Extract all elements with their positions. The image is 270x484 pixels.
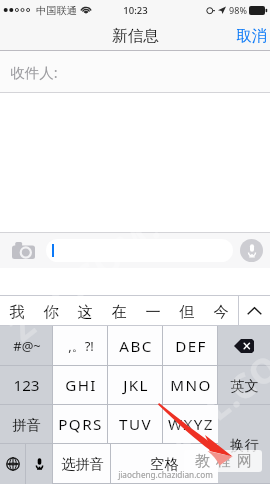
button[interactable]: 选拼音 — [53, 444, 111, 484]
staticText: 收件人: — [10, 62, 58, 82]
staticText: WXYZ — [168, 414, 214, 435]
staticText: JKL — [123, 375, 149, 396]
button[interactable]: Expand candidates — [238, 296, 270, 326]
staticText: MNO — [170, 375, 212, 396]
staticText: 今 — [213, 302, 229, 321]
staticText: TUV — [119, 414, 152, 435]
staticText: 新信息 — [112, 26, 159, 46]
staticText: ZOL.COM.CN — [0, 173, 210, 351]
button[interactable]: 换行 — [218, 405, 270, 484]
button[interactable]: DEF — [163, 326, 218, 366]
button[interactable]: 英文 — [218, 366, 270, 405]
staticText: 换行 — [230, 436, 259, 454]
staticText: 这 — [77, 302, 93, 321]
staticText: 但 — [179, 302, 195, 321]
staticText: 教程网 — [192, 452, 255, 471]
button[interactable]: 取消 — [226, 20, 270, 51]
staticText: 中国联通 — [36, 4, 77, 17]
button[interactable]: Switch keyboard — [0, 444, 26, 484]
staticText: #@~ — [13, 337, 41, 355]
staticText: 取消 — [236, 26, 267, 45]
staticText: 英文 — [230, 377, 259, 395]
staticText: 你 — [43, 302, 59, 321]
staticText: DEF — [175, 336, 207, 357]
button[interactable]: 这 — [68, 296, 102, 326]
button[interactable]: Backspace — [218, 326, 270, 366]
button[interactable]: TUV — [108, 405, 163, 444]
button[interactable]: ABC — [108, 326, 163, 366]
button[interactable]: Camera — [0, 232, 46, 268]
button[interactable]: ,。?! — [53, 326, 108, 366]
button[interactable]: 我 — [0, 296, 34, 326]
staticText: GHI — [65, 375, 97, 396]
button[interactable]: Voice message — [233, 232, 270, 268]
button[interactable]: 但 — [170, 296, 204, 326]
staticText: 10:23 — [123, 4, 148, 17]
staticText: 选拼音 — [61, 455, 104, 473]
staticText: ABC — [119, 336, 153, 357]
staticText: ZOL.COM.CN — [156, 283, 270, 461]
staticText: 拼音 — [12, 416, 41, 434]
staticText: 一 — [145, 302, 161, 321]
button[interactable]: #@~ — [0, 326, 53, 366]
staticText: jiaocheng.chazidian.com — [118, 469, 213, 480]
staticText: 空格 — [150, 455, 179, 473]
staticText: 98% — [229, 4, 247, 16]
button[interactable]: WXYZ — [163, 405, 218, 444]
staticText: PQRS — [58, 414, 103, 435]
button[interactable]: 你 — [34, 296, 68, 326]
button[interactable]: 收件人: — [0, 51, 270, 93]
staticText: 我 — [9, 302, 25, 321]
button[interactable]: 123 — [0, 366, 53, 405]
staticText: 在 — [111, 302, 127, 321]
button[interactable]: 空格 — [111, 444, 218, 484]
button[interactable]: Dictation — [26, 444, 53, 484]
button[interactable]: MNO — [163, 366, 218, 405]
button[interactable]: PQRS — [53, 405, 108, 444]
button[interactable] — [46, 239, 233, 262]
staticText: ,。?! — [68, 337, 94, 355]
staticText: 123 — [13, 375, 40, 396]
button[interactable]: JKL — [108, 366, 163, 405]
button[interactable]: 拼音 — [0, 405, 53, 444]
button[interactable]: 一 — [136, 296, 170, 326]
button[interactable]: GHI — [53, 366, 108, 405]
button[interactable]: 今 — [204, 296, 238, 326]
button[interactable]: 在 — [102, 296, 136, 326]
